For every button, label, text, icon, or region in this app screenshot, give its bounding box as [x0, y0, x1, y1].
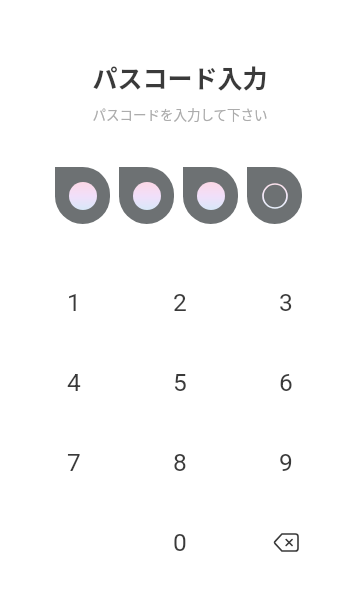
other: Backspace — [274, 534, 298, 551]
staticText: 0 — [173, 528, 187, 557]
staticText: 3 — [279, 288, 293, 317]
staticText: 7 — [67, 448, 81, 477]
button[interactable]: 4 — [21, 342, 127, 422]
button[interactable]: 1 — [21, 262, 127, 342]
staticText: 1 — [67, 288, 81, 317]
button[interactable]: 2 — [127, 262, 233, 342]
button[interactable]: 5 — [127, 342, 233, 422]
button[interactable]: 6 — [233, 342, 339, 422]
button[interactable]: 7 — [21, 422, 127, 502]
staticText: 9 — [279, 448, 293, 477]
button[interactable]: 8 — [127, 422, 233, 502]
button[interactable]: 3 — [233, 262, 339, 342]
button[interactable]: 0 — [127, 502, 233, 582]
button[interactable]: Backspace — [233, 502, 339, 582]
staticText: 2 — [173, 288, 187, 317]
button[interactable]: 9 — [233, 422, 339, 502]
staticText: パスコード入力 — [92, 59, 268, 95]
staticText: 8 — [173, 448, 187, 477]
staticText: パスコードを入力して下さい — [92, 104, 268, 124]
staticText: 6 — [279, 368, 293, 397]
staticText: 4 — [67, 368, 81, 397]
staticText: 5 — [173, 368, 187, 397]
